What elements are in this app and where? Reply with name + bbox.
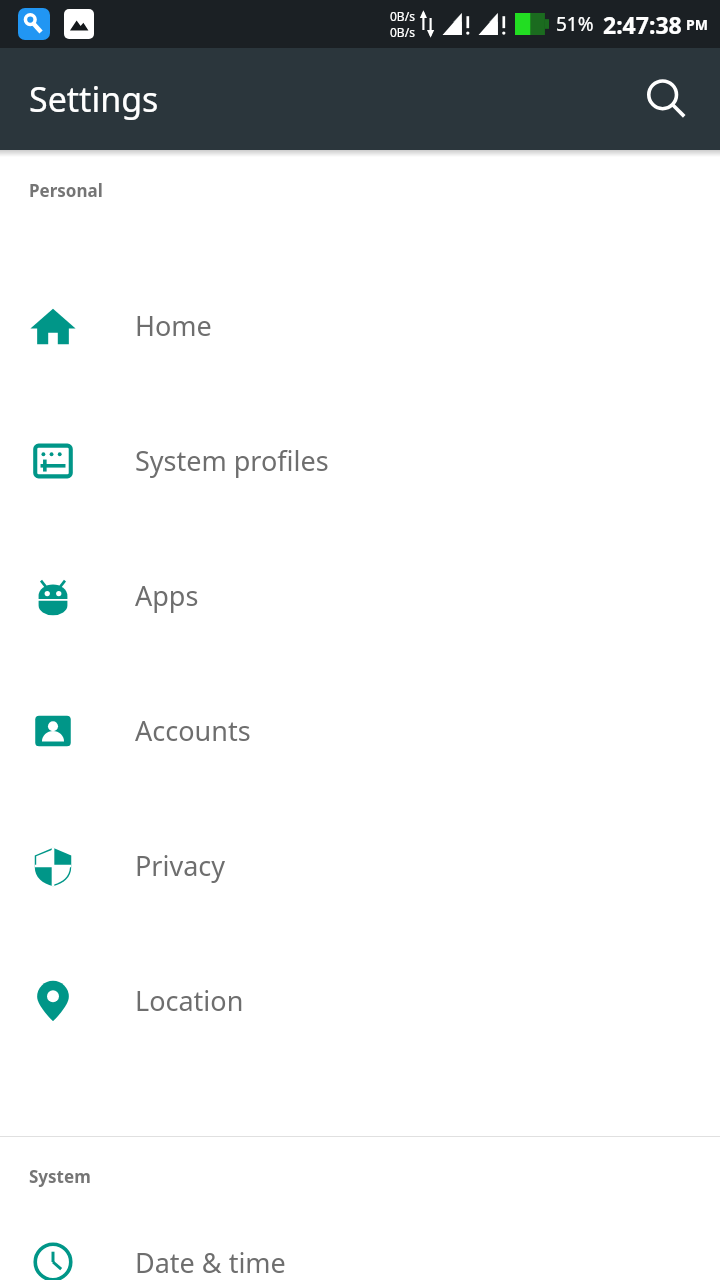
button[interactable]: Accounts: [0, 663, 720, 798]
staticText: Home: [135, 307, 212, 344]
staticText: System profiles: [135, 442, 329, 479]
button[interactable]: Privacy: [0, 798, 720, 933]
staticText: 0B/s: [390, 8, 415, 24]
button[interactable]: Location: [0, 933, 720, 1068]
button[interactable]: Search: [632, 65, 700, 133]
staticText: Apps: [135, 577, 199, 614]
staticText: Privacy: [135, 847, 226, 884]
staticText: Location: [135, 982, 244, 1019]
staticText: 0B/s: [390, 24, 415, 40]
staticText: Date & time: [135, 1244, 286, 1280]
staticText: 51%: [556, 11, 594, 37]
button[interactable]: System profiles: [0, 393, 720, 528]
staticText: Personal: [29, 179, 103, 202]
button[interactable]: Date & time: [0, 1244, 720, 1280]
staticText: Settings: [29, 76, 159, 122]
staticText: Accounts: [135, 712, 251, 749]
button[interactable]: Apps: [0, 528, 720, 663]
staticText: PM: [686, 15, 708, 34]
staticText: System: [29, 1165, 91, 1188]
button[interactable]: Home: [0, 258, 720, 393]
staticText: 2:47:38: [603, 9, 682, 40]
